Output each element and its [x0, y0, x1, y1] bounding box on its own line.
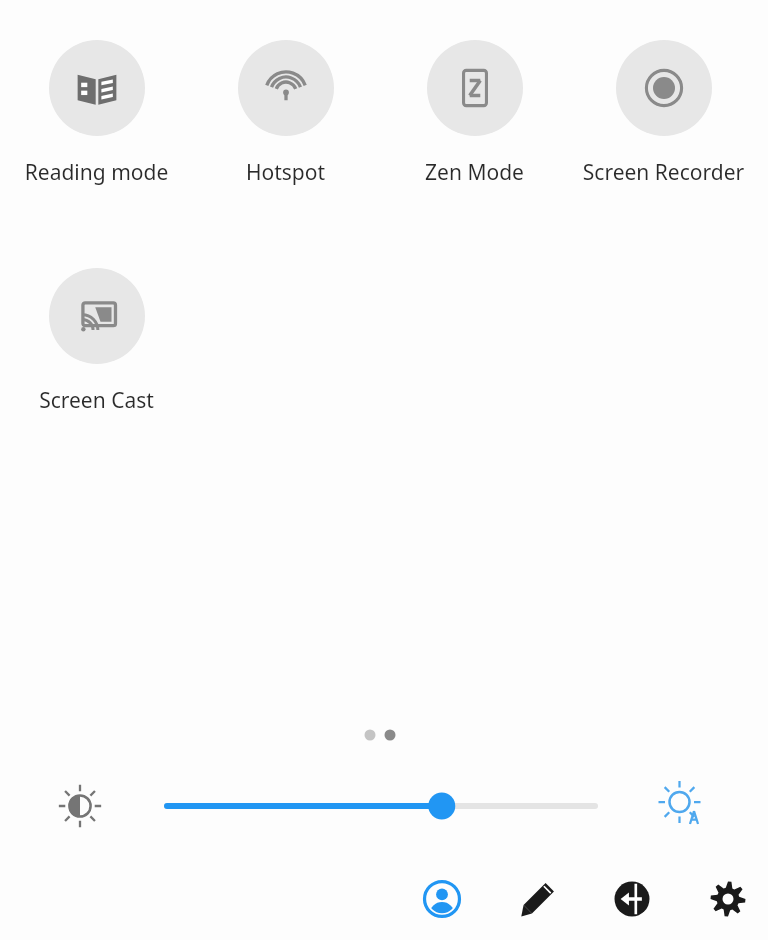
staticText: Screen Cast — [2, 386, 191, 415]
button[interactable] — [160, 782, 602, 830]
staticText: Reading mode — [2, 158, 191, 187]
button[interactable]: User — [414, 871, 470, 927]
button[interactable]: Power off — [604, 871, 660, 927]
button[interactable]: Hotspot — [191, 40, 380, 187]
staticText: Hotspot — [191, 158, 380, 187]
button[interactable]: Zen Mode — [380, 40, 569, 187]
staticText: Zen Mode — [380, 158, 569, 187]
button[interactable]: Auto brightness — [654, 778, 710, 834]
button[interactable]: Edit — [510, 871, 566, 927]
button[interactable]: Reading mode — [2, 40, 191, 187]
button[interactable]: Brightness low — [52, 778, 108, 834]
staticText: Screen Recorder — [569, 158, 758, 187]
button[interactable]: Screen Recorder — [569, 40, 758, 187]
button[interactable]: Screen Cast — [2, 268, 191, 415]
button[interactable]: Settings — [700, 871, 756, 927]
